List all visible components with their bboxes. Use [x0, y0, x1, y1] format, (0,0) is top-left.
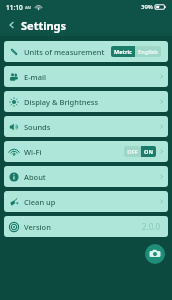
staticText: E-mail: [24, 72, 47, 82]
button[interactable]: OFF: [124, 146, 156, 157]
button[interactable]: Sounds: [4, 116, 168, 137]
staticText: Display & Brightness: [24, 97, 99, 107]
button[interactable]: Version: [4, 216, 168, 237]
staticText: 39%: [141, 3, 153, 11]
button[interactable]: About: [4, 166, 168, 187]
staticText: ON: [144, 148, 153, 155]
staticText: Version: [24, 222, 51, 232]
staticText: 2.0.0: [142, 221, 161, 232]
staticText: AM: [25, 5, 32, 10]
staticText: Units of measurement: [24, 47, 105, 57]
button[interactable]: Display & Brightness: [4, 91, 168, 112]
staticText: OFF: [127, 148, 138, 155]
staticText: English: [138, 48, 158, 55]
staticText: About: [24, 172, 46, 182]
staticText: Metric: [114, 48, 132, 55]
button[interactable]: Clean up: [4, 191, 168, 212]
button[interactable]: Screenshot: [145, 244, 165, 264]
button[interactable]: Units of measurement: [4, 41, 168, 62]
button[interactable]: E-mail: [4, 66, 168, 87]
staticText: Wi-Fi: [24, 147, 42, 157]
button[interactable]: Back: [5, 18, 19, 32]
staticText: Clean up: [24, 197, 56, 207]
button[interactable]: Metric: [111, 46, 161, 57]
staticText: Sounds: [24, 122, 51, 132]
button[interactable]: Wi-Fi: [4, 141, 168, 162]
staticText: 11:10: [6, 3, 23, 12]
staticText: Settings: [21, 18, 67, 33]
